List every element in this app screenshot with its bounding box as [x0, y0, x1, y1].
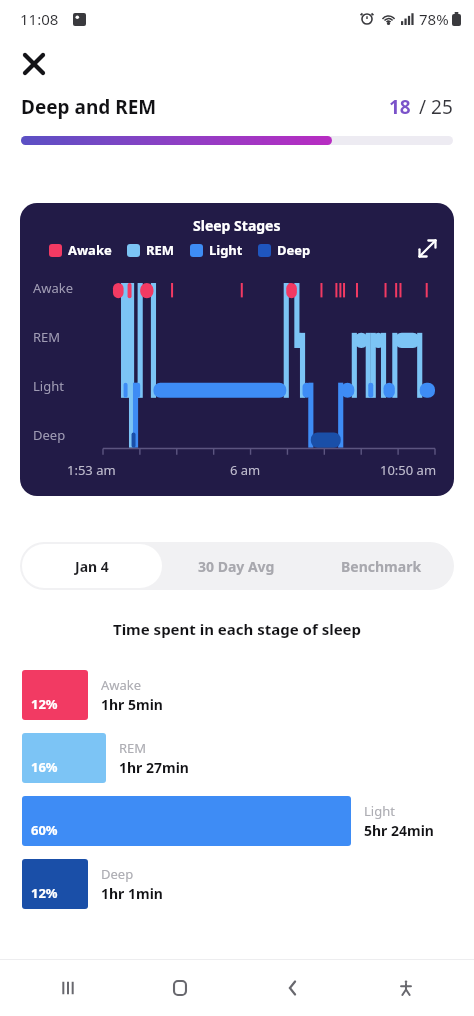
staticText: Light: [209, 241, 243, 259]
button[interactable]: Close: [13, 43, 55, 85]
staticText: 10:50 am: [380, 461, 437, 479]
staticText: Awake: [68, 241, 112, 259]
button[interactable]: 16%: [22, 733, 460, 783]
button[interactable]: Expand chart: [409, 230, 445, 266]
staticText: 1hr 5min: [101, 695, 163, 714]
staticText: Deep and REM: [21, 94, 157, 120]
staticText: 5hr 24min: [364, 821, 434, 840]
button[interactable]: 12%: [22, 859, 460, 909]
staticText: Sleep Stages: [193, 216, 281, 235]
button[interactable]: 60%: [22, 796, 460, 846]
staticText: Awake: [33, 279, 74, 297]
staticText: 12%: [31, 695, 58, 713]
staticText: 1hr 1min: [101, 884, 163, 903]
staticText: 78%: [419, 9, 449, 29]
staticText: 1hr 27min: [119, 758, 189, 777]
staticText: 11:08: [20, 9, 59, 29]
staticText: Deep: [277, 241, 311, 259]
staticText: 18: [389, 94, 411, 120]
staticText: / 25: [419, 94, 453, 120]
staticText: 60%: [31, 821, 58, 839]
staticText: 12%: [31, 884, 58, 902]
staticText: Time spent in each stage of sleep: [0, 619, 474, 639]
staticText: Deep: [33, 426, 66, 444]
staticText: 6 am: [230, 461, 261, 479]
button[interactable]: 12%: [22, 670, 460, 720]
button[interactable]: Home: [124, 960, 236, 1016]
staticText: 16%: [31, 758, 58, 776]
staticText: Awake: [101, 676, 142, 694]
button[interactable]: 30 Day Avg: [164, 542, 309, 590]
staticText: 30 Day Avg: [198, 557, 275, 576]
button[interactable]: Recent apps: [12, 960, 124, 1016]
button[interactable]: Sleep Stages: [20, 203, 454, 496]
staticText: Light: [33, 377, 64, 395]
button[interactable]: Benchmark: [309, 542, 454, 590]
staticText: 1:53 am: [67, 461, 116, 479]
button[interactable]: Back: [236, 960, 349, 1016]
staticText: Deep: [101, 865, 134, 883]
button[interactable]: Accessibility: [349, 960, 462, 1016]
staticText: REM: [119, 739, 147, 757]
staticText: REM: [146, 241, 175, 259]
staticText: Light: [364, 802, 395, 820]
staticText: Benchmark: [341, 557, 422, 576]
staticText: REM: [33, 328, 61, 346]
button[interactable]: Jan 4: [22, 544, 162, 588]
staticText: Jan 4: [75, 557, 109, 576]
